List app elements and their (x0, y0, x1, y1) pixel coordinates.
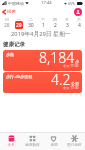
staticText: 4 (78, 22, 81, 29)
staticText: 四 (53, 17, 57, 21)
staticText: 65% (68, 1, 76, 6)
staticText: 摘要 (7, 9, 16, 15)
staticText: 今天 17:30 (63, 64, 79, 68)
button[interactable]: 来源 (43, 133, 64, 150)
staticText: 29 (16, 22, 22, 29)
button[interactable]: 1 (37, 21, 49, 29)
staticText: 健康数据 (25, 143, 40, 148)
staticText: 五 (65, 17, 69, 21)
button[interactable]: 医疗急救 (64, 133, 85, 150)
staticText: 三 (41, 17, 45, 21)
button[interactable]: 4 (73, 21, 85, 29)
staticText: 日 (5, 17, 9, 21)
staticText: 公里 (71, 81, 79, 86)
staticText: 今天 (7, 143, 15, 148)
staticText: 30 (28, 22, 34, 29)
staticText: 一 (17, 17, 21, 21)
staticText: 步数 (6, 52, 14, 57)
button[interactable]: 28 (0, 21, 13, 29)
staticText: 2019年4月29日 星期一 (11, 30, 71, 38)
button[interactable]: 步数 (3, 50, 82, 71)
staticText: 健康记录 (3, 41, 25, 48)
button[interactable]: 健康数据 (22, 133, 43, 150)
button[interactable]: 摘要 (1, 8, 17, 16)
staticText: 来源 (50, 143, 58, 148)
button[interactable]: 29 (13, 21, 25, 29)
staticText: 4.2 (51, 72, 71, 89)
button[interactable]: Profile (74, 8, 82, 16)
button[interactable]: 步行+跑步里程 (3, 72, 82, 93)
staticText: 17:44 (41, 0, 52, 6)
staticText: 1 (42, 22, 45, 29)
staticText: 步行+跑步里程 (6, 74, 33, 79)
staticText: 3 (66, 22, 69, 29)
staticText: 步 (75, 59, 79, 64)
button[interactable]: 今天 (0, 133, 22, 150)
staticText: 医疗急救 (67, 143, 82, 148)
button[interactable]: 3 (61, 21, 73, 29)
staticText: 8,184 (39, 50, 75, 67)
staticText: 六 (77, 17, 81, 21)
staticText: 今天 17:30 (63, 86, 79, 90)
staticText: 2 (54, 22, 57, 29)
staticText: 28 (4, 22, 10, 29)
staticText: 中国移动 (8, 1, 24, 6)
staticText: 二 (29, 17, 33, 21)
button[interactable]: 2 (49, 21, 61, 29)
button[interactable]: 30 (25, 21, 37, 29)
